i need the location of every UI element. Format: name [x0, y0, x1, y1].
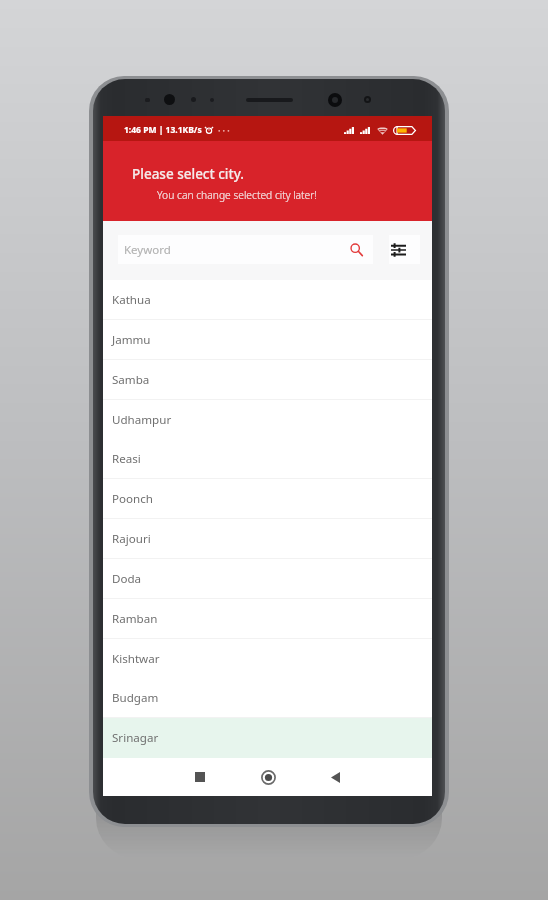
button[interactable]: Back [318, 761, 352, 793]
button[interactable]: Keyword [118, 235, 373, 264]
button[interactable]: Recent apps [183, 761, 217, 793]
button[interactable]: Samba [103, 360, 432, 400]
button[interactable]: Kishtwar [103, 639, 432, 679]
button[interactable]: Doda [103, 559, 432, 599]
button[interactable]: Kathua [103, 280, 432, 320]
button[interactable]: Reasi [103, 439, 432, 479]
button[interactable]: Home [251, 761, 285, 793]
staticText: 1:46 PM | 13.1KB/s [124, 124, 202, 136]
button[interactable]: Poonch [103, 479, 432, 519]
staticText: Udhampur [112, 412, 172, 428]
staticText: Budgam [112, 690, 159, 706]
button[interactable]: Srinagar [103, 718, 432, 758]
button[interactable]: Jammu [103, 320, 432, 360]
staticText: Rajouri [112, 531, 151, 547]
button[interactable]: Sort [389, 235, 420, 264]
staticText: Jammu [112, 332, 151, 348]
staticText: Reasi [112, 451, 141, 467]
staticText: Samba [112, 372, 150, 388]
button[interactable]: Budgam [103, 678, 432, 718]
staticText: Doda [112, 571, 142, 587]
button[interactable]: Ramban [103, 599, 432, 639]
staticText: Srinagar [112, 730, 159, 746]
staticText: Kathua [112, 292, 151, 308]
button[interactable]: Udhampur [103, 400, 432, 440]
staticText: Please select city. [132, 165, 244, 183]
staticText: Kishtwar [112, 651, 160, 667]
button[interactable]: Rajouri [103, 519, 432, 559]
staticText: You can change selected city later! [103, 188, 371, 202]
staticText: Keyword [124, 242, 171, 258]
staticText: Poonch [112, 491, 153, 507]
staticText: Ramban [112, 611, 158, 627]
